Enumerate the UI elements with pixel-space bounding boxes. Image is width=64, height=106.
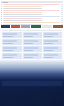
button[interactable]: Item card [2, 32, 22, 38]
button[interactable] [1, 11, 63, 13]
button[interactable] [1, 7, 63, 9]
button[interactable]: Item card [43, 32, 62, 38]
button[interactable]: Item card [43, 46, 62, 52]
button[interactable]: Item card [43, 53, 62, 59]
button[interactable]: Item card [23, 32, 42, 38]
button[interactable] [1, 25, 63, 28]
button[interactable] [1, 21, 63, 23]
button[interactable] [1, 1, 63, 3]
button[interactable]: Item card [23, 53, 42, 59]
button[interactable] [1, 3, 63, 5]
button[interactable]: Item card [23, 39, 42, 45]
button[interactable] [1, 9, 63, 11]
button[interactable]: Item card [2, 39, 22, 45]
button[interactable] [1, 13, 63, 15]
button[interactable] [1, 17, 63, 19]
button[interactable] [1, 19, 63, 21]
button[interactable] [1, 5, 63, 7]
button[interactable] [1, 23, 63, 25]
button[interactable]: Item card [23, 46, 42, 52]
button[interactable]: Item card [2, 46, 22, 52]
button[interactable]: Item card [43, 39, 62, 45]
button[interactable] [1, 15, 63, 17]
button[interactable]: Item card [2, 53, 22, 59]
